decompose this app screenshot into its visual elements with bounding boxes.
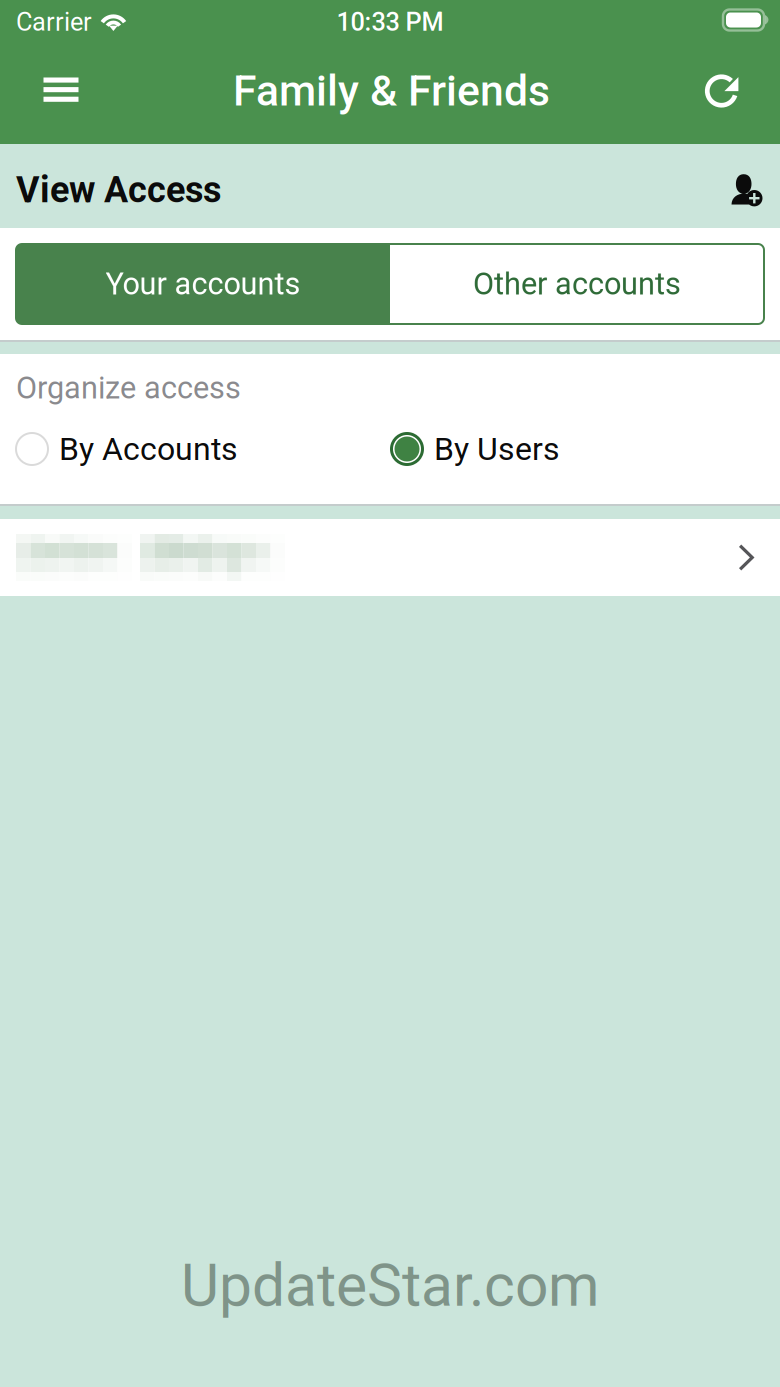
button[interactable]: Add person xyxy=(731,156,763,216)
staticText: By Users xyxy=(434,430,560,468)
staticText: UpdateStar.com xyxy=(181,1251,599,1320)
staticText: Family & Friends xyxy=(233,66,550,116)
staticText: Organize access xyxy=(16,370,241,406)
staticText: 10:33 PM xyxy=(336,7,443,37)
button[interactable]: Menu xyxy=(25,58,97,130)
button[interactable] xyxy=(0,519,780,596)
button[interactable]: By Users xyxy=(390,418,780,480)
staticText: View Access xyxy=(16,169,221,211)
staticText: Other accounts xyxy=(473,266,681,302)
button[interactable]: By Accounts xyxy=(0,418,390,480)
button[interactable]: Other accounts xyxy=(390,244,764,324)
staticText: Your accounts xyxy=(105,266,300,302)
button[interactable]: Refresh xyxy=(686,58,758,130)
button[interactable]: Your accounts xyxy=(16,244,390,324)
staticText: By Accounts xyxy=(59,430,238,468)
staticText: Carrier xyxy=(16,7,92,37)
